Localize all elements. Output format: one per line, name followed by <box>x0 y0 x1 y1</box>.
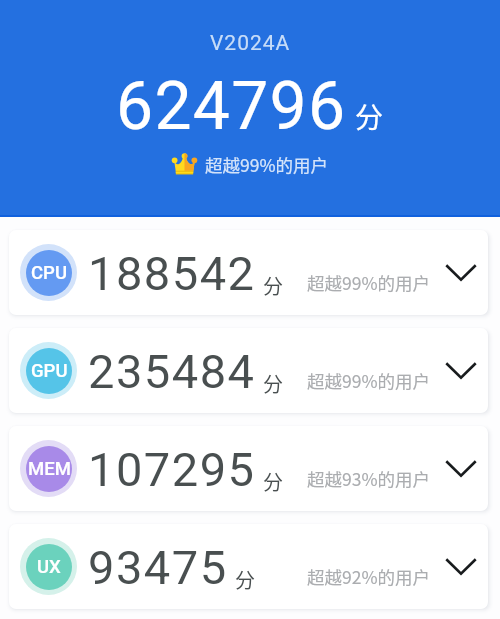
button[interactable]: UX <box>9 524 488 609</box>
button[interactable]: MEM <box>9 426 488 511</box>
staticText: 分 <box>263 369 283 398</box>
other: Expand details <box>445 362 477 379</box>
staticText: MEM <box>28 458 71 480</box>
other: Expand details <box>445 558 477 575</box>
staticText: 分 <box>263 271 283 300</box>
staticText: 624796 <box>116 68 347 145</box>
staticText: 超越93%的用户 <box>307 466 431 491</box>
other: Expand details <box>445 264 477 281</box>
staticText: 93475 <box>88 540 228 595</box>
staticText: 超越92%的用户 <box>307 564 431 589</box>
button[interactable]: GPU <box>9 328 488 413</box>
staticText: 分 <box>235 565 255 594</box>
other: Expand details <box>445 460 477 477</box>
staticText: CPU <box>31 262 67 284</box>
staticText: 107295 <box>88 442 256 497</box>
staticText: 235484 <box>88 344 256 399</box>
staticText: 超越99%的用户 <box>307 368 431 393</box>
staticText: UX <box>37 556 61 578</box>
staticText: GPU <box>31 360 68 382</box>
staticText: 超越99%的用户 <box>307 270 431 295</box>
button[interactable]: CPU <box>9 230 488 315</box>
staticText: V2024A <box>210 31 291 56</box>
staticText: 分 <box>355 96 384 137</box>
staticText: 超越99%的用户 <box>205 152 329 177</box>
staticText: 188542 <box>88 246 256 301</box>
staticText: 分 <box>263 467 283 496</box>
